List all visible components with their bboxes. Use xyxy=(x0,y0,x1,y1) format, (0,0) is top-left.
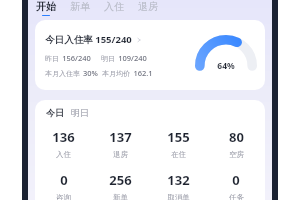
button[interactable]: 0 xyxy=(35,171,92,200)
staticText: 在住 xyxy=(171,150,186,159)
staticText: 入住 xyxy=(56,150,71,159)
staticText: 新单 xyxy=(70,0,90,13)
button[interactable]: 137 xyxy=(92,128,149,159)
button[interactable]: 入住 xyxy=(104,0,124,15)
staticText: 咨询 xyxy=(56,193,71,200)
staticText: 取消单 xyxy=(167,193,190,200)
staticText: 任务 xyxy=(229,193,244,200)
button[interactable]: 明日 xyxy=(71,107,89,118)
button[interactable]: 开始 xyxy=(36,0,56,16)
staticText: 本月入住率 xyxy=(45,69,80,78)
staticText: 30% xyxy=(83,68,98,78)
staticText: 136 xyxy=(52,128,75,146)
button[interactable]: 136 xyxy=(35,128,92,159)
staticText: 昨日 xyxy=(45,54,59,63)
other: 查看详情 xyxy=(136,37,142,43)
staticText: 132 xyxy=(167,171,190,189)
button[interactable]: 0 xyxy=(207,171,265,200)
staticText: 256 xyxy=(109,171,132,189)
button[interactable]: 今日 xyxy=(46,107,64,118)
staticText: 0 xyxy=(60,171,68,189)
staticText: 本月均价 xyxy=(102,69,130,78)
staticText: 64% xyxy=(217,60,235,72)
staticText: 162.1 xyxy=(133,68,153,78)
button[interactable]: 退房 xyxy=(138,0,158,15)
staticText: 空房 xyxy=(229,150,244,159)
staticText: 明日 xyxy=(71,107,89,118)
button[interactable]: 今日入住率 155/240 xyxy=(35,20,265,90)
staticText: 137 xyxy=(109,128,132,146)
staticText: 156/240 xyxy=(62,53,91,63)
button[interactable]: 132 xyxy=(149,171,207,200)
staticText: 今日入住率 155/240 xyxy=(45,33,132,46)
button[interactable]: 256 xyxy=(92,171,149,200)
staticText: 80 xyxy=(229,128,244,146)
staticText: 退房 xyxy=(138,0,158,13)
button[interactable]: 155 xyxy=(149,128,207,159)
staticText: 明日 xyxy=(101,54,115,63)
button[interactable]: 新单 xyxy=(70,0,90,15)
staticText: 新单 xyxy=(113,193,128,200)
staticText: 155 xyxy=(167,128,190,146)
button[interactable]: 80 xyxy=(207,128,265,159)
staticText: 开始 xyxy=(36,0,56,13)
staticText: 入住 xyxy=(104,0,124,13)
staticText: 0 xyxy=(232,171,240,189)
staticText: 109/240 xyxy=(118,53,147,63)
staticText: 今日 xyxy=(46,107,64,118)
staticText: 退房 xyxy=(113,150,128,159)
